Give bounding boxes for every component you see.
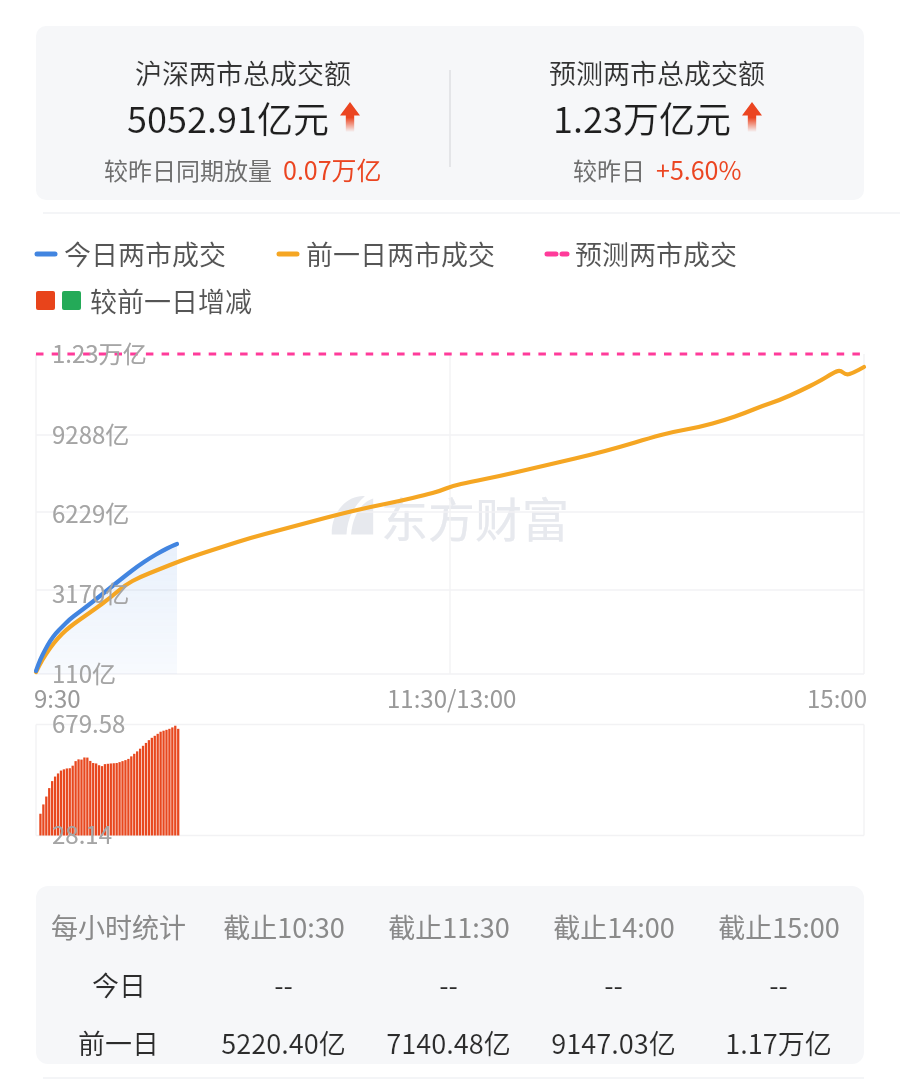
staticText: 110亿 (52, 655, 116, 690)
staticText: 东方财富 (381, 482, 569, 550)
staticText: 5220.40亿 (221, 1023, 346, 1062)
staticText: 预测两市成交 (575, 234, 737, 273)
staticText: +5.60% (656, 151, 742, 187)
button[interactable]: 预测两市成交 (545, 234, 737, 273)
staticText: 15:00 (807, 680, 867, 715)
staticText: 679.58 (52, 705, 126, 740)
button[interactable]: 较前一日增减 (36, 281, 252, 320)
staticText: 11:30/13:00 (387, 680, 517, 715)
staticText: 前一日 (78, 1023, 159, 1062)
staticText: 9288亿 (52, 416, 130, 451)
staticText: 9147.03亿 (551, 1023, 676, 1062)
staticText: -- (274, 965, 293, 1004)
staticText: -- (604, 965, 623, 1004)
staticText: 截止14:00 (553, 907, 675, 946)
staticText: 9:30 (34, 680, 81, 715)
staticText: 沪深两市总成交额 (135, 53, 351, 92)
staticText: 每小时统计 (51, 907, 186, 946)
staticText: -- (439, 965, 458, 1004)
staticText: 1.23万亿 (52, 335, 147, 370)
staticText: 截止10:30 (223, 907, 345, 946)
staticText: 较昨日 (573, 152, 645, 187)
button[interactable]: 每小时统计 (36, 886, 864, 1064)
staticText: 28.14 (52, 816, 112, 851)
staticText: 7140.48亿 (386, 1023, 511, 1062)
staticText: 1.17万亿 (725, 1023, 832, 1062)
staticText: 截止11:30 (388, 907, 510, 946)
staticText: 预测两市总成交额 (549, 53, 765, 92)
staticText: 前一日两市成交 (306, 234, 495, 273)
button[interactable]: 前一日两市成交 (278, 234, 495, 273)
staticText: 今日两市成交 (64, 234, 226, 273)
staticText: 截止15:00 (718, 907, 840, 946)
staticText: 较前一日增减 (90, 281, 252, 320)
staticText: 5052.91亿元 (127, 91, 329, 143)
staticText: -- (769, 965, 788, 1004)
staticText: 1.23万亿元 (553, 91, 731, 143)
staticText: 6229亿 (52, 495, 130, 530)
button[interactable]: 今日两市成交 (36, 234, 226, 273)
staticText: 0.07万亿 (283, 151, 382, 187)
button[interactable]: 沪深两市总成交额 (36, 26, 864, 200)
staticText: 今日 (92, 965, 146, 1004)
staticText: 3170亿 (52, 575, 130, 610)
staticText: 较昨日同期放量 (104, 152, 272, 187)
